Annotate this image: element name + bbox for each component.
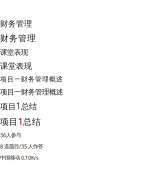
staticText: 项目1总结 <box>0 101 37 112</box>
staticText: 财务管理 <box>0 33 36 44</box>
staticText: 项目1总结 <box>0 116 41 127</box>
staticText: 课堂表现 <box>0 61 32 71</box>
staticText: 项目一财务管理概述 <box>0 75 63 83</box>
staticText: 中国移动 0.10K/s <box>0 154 39 161</box>
staticText: 财务管理 <box>0 19 32 29</box>
staticText: 36人参与 <box>0 131 21 139</box>
staticText: 项目一财务管理概述 <box>0 87 63 97</box>
staticText: 课堂表现 <box>0 48 28 57</box>
staticText: 8 道题目/35 人作答 <box>0 143 43 150</box>
